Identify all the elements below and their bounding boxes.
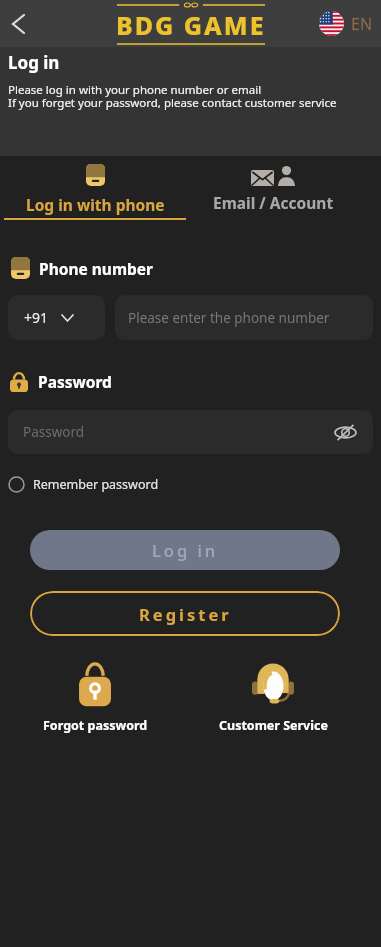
staticText: Customer Service <box>219 717 328 734</box>
staticText: EN <box>351 13 373 35</box>
staticText: Phone number <box>39 258 153 279</box>
staticText: Forgot password <box>43 717 148 734</box>
button[interactable]: +91 <box>8 295 105 340</box>
button[interactable]: Email / Account <box>190 156 356 213</box>
staticText: Please enter the phone number <box>128 309 330 327</box>
button[interactable]: Please enter the phone number <box>115 295 373 340</box>
button[interactable]: Remember password <box>8 476 159 493</box>
button[interactable]: Forgot password <box>0 662 190 734</box>
button[interactable]: Password <box>8 410 373 454</box>
staticText: Register <box>139 603 232 625</box>
staticText: +91 <box>24 308 49 327</box>
button[interactable]: EN <box>319 11 373 36</box>
button[interactable]: Log in with phone <box>0 156 190 215</box>
button[interactable]: Log in <box>30 530 340 570</box>
staticText: BDG GAME <box>116 8 266 42</box>
staticText: Password <box>23 423 85 441</box>
button[interactable]: Register <box>30 591 340 636</box>
staticText: Please log in with your phone number or … <box>8 82 337 111</box>
button[interactable]: Customer Service <box>190 662 356 734</box>
staticText: Password <box>38 371 112 392</box>
staticText: Email / Account <box>213 192 334 213</box>
button[interactable] <box>0 0 36 47</box>
staticText: Remember password <box>33 476 159 493</box>
staticText: Log in <box>8 51 60 74</box>
staticText: Log in with phone <box>26 194 165 215</box>
staticText: Log in <box>152 539 219 561</box>
